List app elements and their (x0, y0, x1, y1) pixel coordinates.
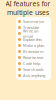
staticText: Ask anything (23, 73, 45, 78)
staticText: Write an email (23, 28, 38, 39)
staticText: Summarize (23, 19, 44, 24)
staticText: AI features for (5, 0, 50, 8)
staticText: Explain this (23, 37, 42, 42)
staticText: multiple uses (7, 8, 49, 17)
staticText: Code help (23, 61, 40, 66)
staticText: Search web (23, 67, 43, 72)
staticText: Brainstorm (23, 49, 44, 54)
staticText: Rewrite text (23, 55, 43, 60)
staticText: Translate (23, 25, 39, 30)
staticText: Make a plan (23, 43, 44, 48)
